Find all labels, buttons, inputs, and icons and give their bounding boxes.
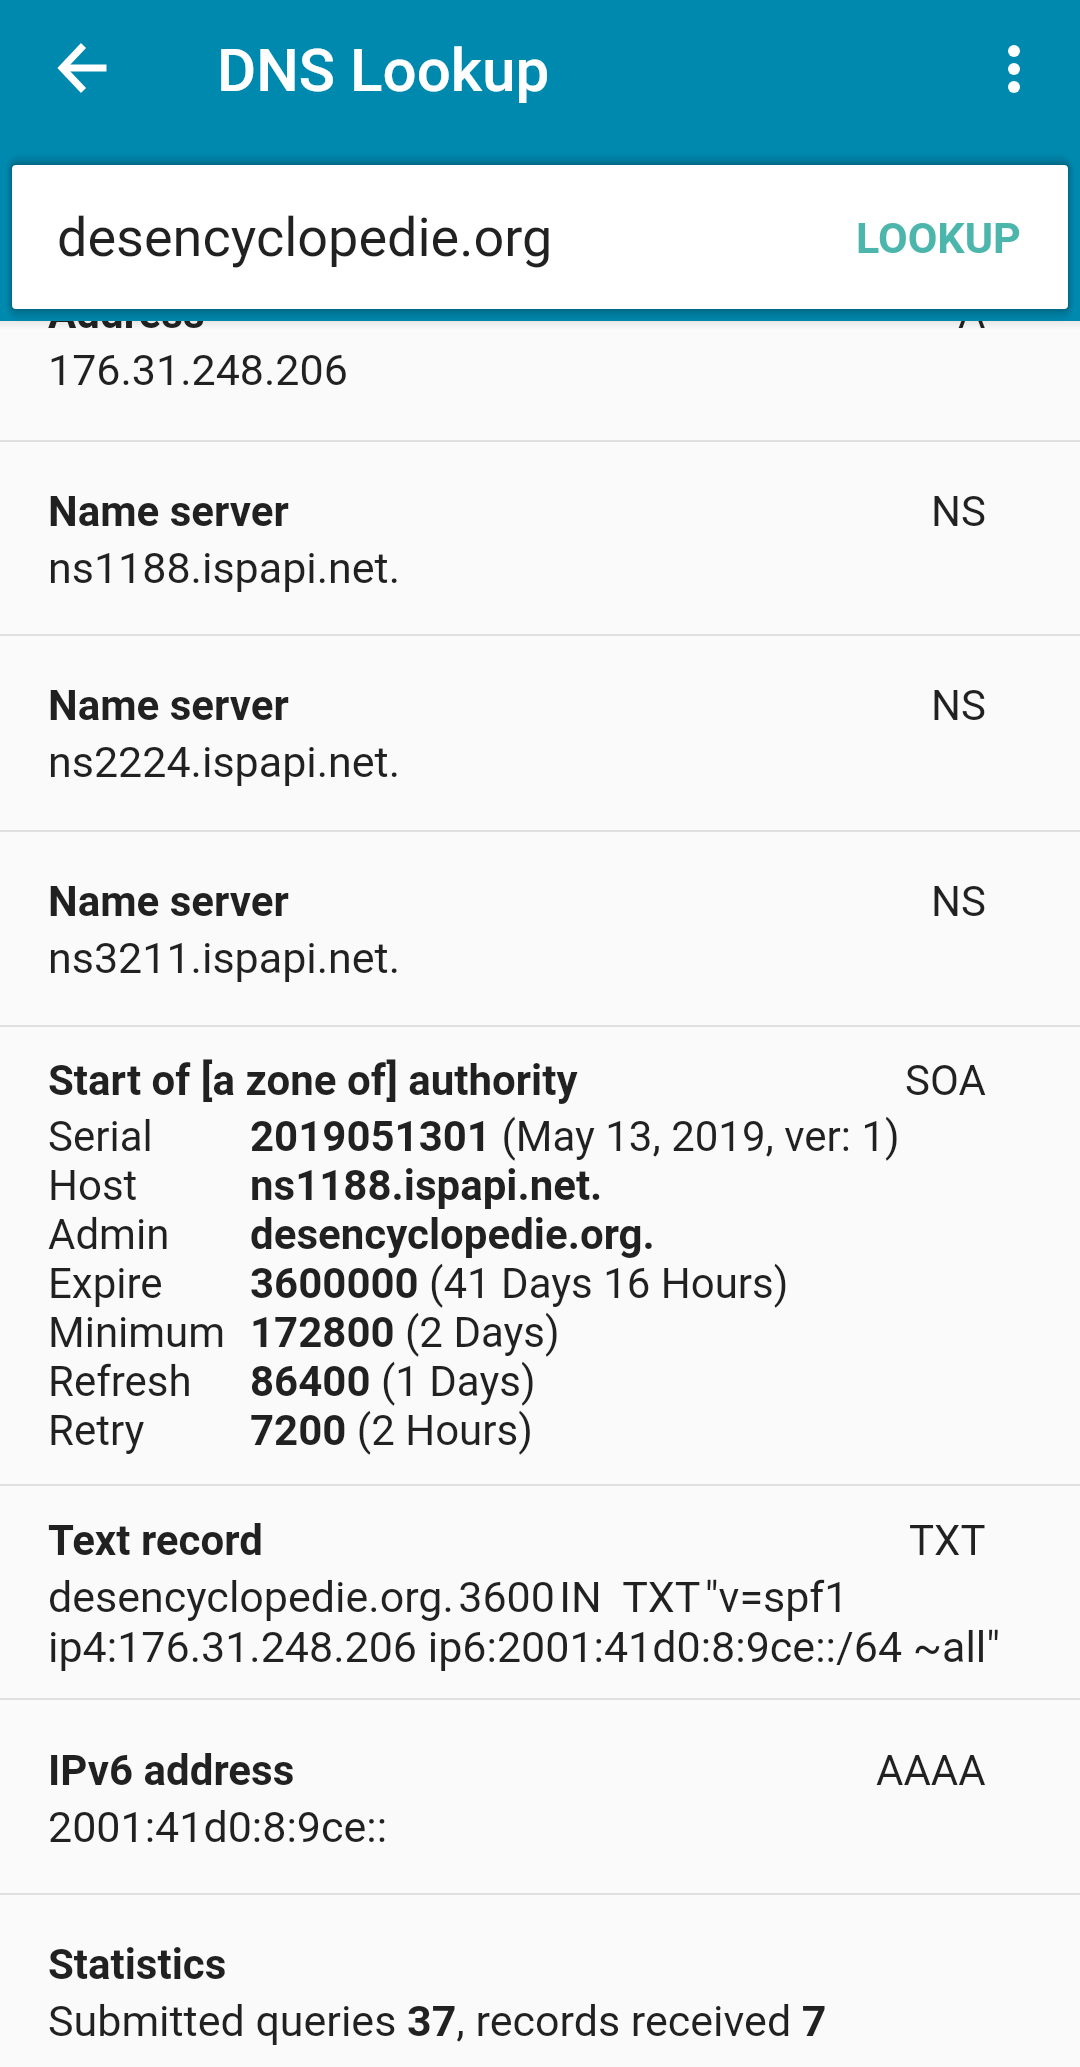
staticText: Host xyxy=(48,1161,250,1210)
staticText: Name server xyxy=(48,681,289,730)
staticText: 2019051301 (May 13, 2019, ver: 1) xyxy=(250,1112,900,1161)
staticText: NS xyxy=(931,487,986,536)
staticText: Address xyxy=(48,289,205,338)
staticText: ns1188.ispapi.net. xyxy=(48,543,401,593)
staticText: 176.31.248.206 xyxy=(48,345,348,395)
staticText: ns2224.ispapi.net. xyxy=(48,737,401,787)
button[interactable]: More options xyxy=(966,20,1062,116)
button[interactable]: Name server xyxy=(0,442,1080,634)
staticText: ns3211.ispapi.net. xyxy=(48,933,401,983)
staticText: desencyclopedie.org. 3600 IN TXT "v=spf1 xyxy=(48,1572,849,1622)
staticText: LOOKUP xyxy=(856,213,1021,263)
staticText: DNS Lookup xyxy=(217,35,550,105)
button[interactable]: Back xyxy=(36,20,132,116)
staticText: desencyclopedie.org. xyxy=(250,1210,655,1259)
staticText: 3600000 (41 Days 16 Hours) xyxy=(250,1259,789,1308)
staticText: SOA xyxy=(905,1056,986,1105)
staticText: 2001:41d0:8:9ce:: xyxy=(48,1802,388,1852)
staticText: NS xyxy=(931,681,986,730)
staticText: Admin xyxy=(48,1210,250,1259)
staticText: Expire xyxy=(48,1259,250,1308)
staticText: ns1188.ispapi.net. xyxy=(250,1161,603,1210)
staticText: Text record xyxy=(48,1516,263,1565)
staticText: IPv6 address xyxy=(48,1746,295,1795)
staticText: desencyclopedie.org xyxy=(57,206,553,269)
staticText: Start of [a zone of] authority xyxy=(48,1056,578,1105)
button[interactable]: Name server xyxy=(0,636,1080,830)
staticText: Retry xyxy=(48,1406,250,1455)
staticText: Refresh xyxy=(48,1357,250,1406)
staticText: NS xyxy=(931,877,986,926)
staticText: AAAA xyxy=(876,1746,986,1795)
staticText: ip4:176.31.248.206 ip6:2001:41d0:8:9ce::… xyxy=(48,1622,1001,1672)
button[interactable]: Name server xyxy=(0,832,1080,1025)
staticText: Name server xyxy=(48,877,289,926)
button[interactable]: Address xyxy=(0,244,1080,440)
staticText: 7200 (2 Hours) xyxy=(250,1406,533,1455)
staticText: Statistics xyxy=(48,1940,227,1989)
button[interactable]: Start of [a zone of] authority xyxy=(0,1027,1080,1484)
staticText: Name server xyxy=(48,487,289,536)
staticText: 172800 (2 Days) xyxy=(250,1308,560,1357)
button[interactable]: IPv6 address xyxy=(0,1700,1080,1893)
button[interactable]: Statistics xyxy=(0,1895,1080,2067)
button[interactable]: LOOKUP xyxy=(814,181,1068,293)
staticText: A xyxy=(958,289,986,338)
button[interactable]: Text record xyxy=(0,1486,1080,1698)
staticText: Serial xyxy=(48,1112,250,1161)
staticText: TXT xyxy=(909,1516,986,1565)
staticText: Submitted queries 37, records received 7 xyxy=(48,1996,827,2046)
staticText: Minimum xyxy=(48,1308,250,1357)
staticText: 86400 (1 Days) xyxy=(250,1357,536,1406)
